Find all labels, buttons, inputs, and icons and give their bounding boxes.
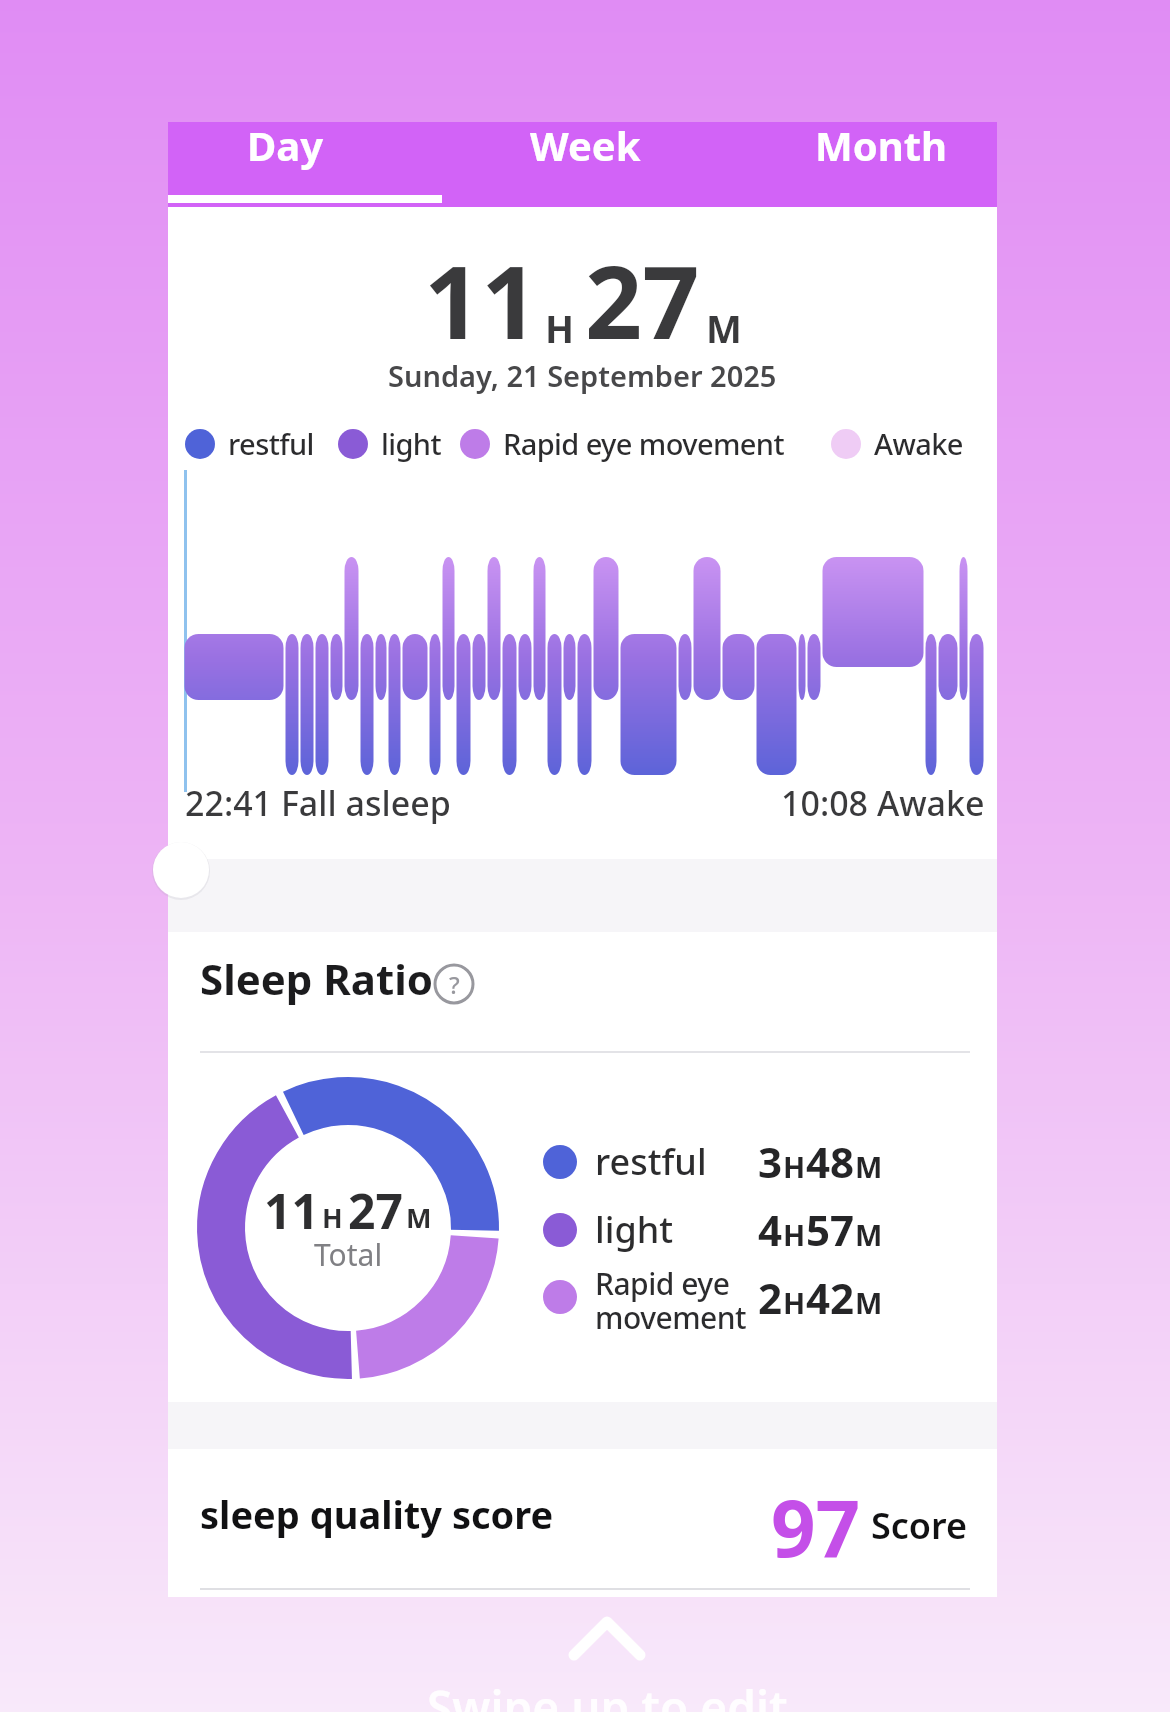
staticText: Awake	[874, 424, 963, 463]
staticText: Day	[247, 118, 324, 172]
button[interactable]: Week	[465, 122, 705, 207]
staticText: Rapid eye movement	[503, 424, 784, 463]
staticText: M	[406, 1199, 432, 1236]
staticText: sleep quality score	[200, 1488, 554, 1540]
button[interactable]: restful	[185, 424, 314, 463]
staticText: Week	[530, 118, 641, 172]
staticText: 57	[806, 1201, 855, 1258]
staticText: 48	[806, 1133, 855, 1190]
staticText: Sleep Ratio	[200, 950, 434, 1007]
button[interactable]: ?	[434, 964, 474, 1004]
staticText: H	[322, 1199, 343, 1236]
staticText: 2	[758, 1269, 783, 1326]
staticText: restful	[595, 1137, 707, 1186]
button[interactable]: light	[338, 424, 441, 463]
staticText: 10:08 Awake	[781, 780, 985, 826]
staticText: Swipe up to edit	[427, 1676, 788, 1712]
button[interactable]: Swipe up to edit	[407, 1582, 807, 1712]
staticText: H	[545, 302, 575, 354]
staticText: 97	[771, 1474, 861, 1564]
staticText: light	[595, 1205, 674, 1254]
staticText: Score	[871, 1501, 968, 1550]
staticText: H	[783, 1215, 806, 1254]
button[interactable]: Rapid eye movement	[460, 424, 784, 463]
staticText: Total	[314, 1234, 383, 1275]
staticText: M	[855, 1147, 883, 1186]
staticText: M	[855, 1215, 883, 1254]
staticText: H	[783, 1283, 806, 1322]
button[interactable]: Awake	[831, 424, 963, 463]
staticText: light	[381, 424, 441, 463]
staticText: ?	[449, 968, 460, 1001]
staticText: Rapid eye movement	[595, 1263, 747, 1331]
staticText: M	[855, 1283, 883, 1322]
staticText: M	[706, 302, 742, 354]
staticText: 3	[758, 1133, 783, 1190]
staticText: 27	[348, 1178, 403, 1243]
staticText: 27	[585, 232, 700, 368]
staticText: Sunday, 21 September 2025	[388, 356, 777, 395]
staticText: Month	[815, 118, 948, 172]
staticText: H	[783, 1147, 806, 1186]
staticText: 22:41 Fall asleep	[185, 780, 451, 826]
staticText: 11	[264, 1178, 319, 1243]
staticText: restful	[228, 424, 314, 463]
staticText: 11	[424, 232, 539, 368]
button[interactable]: Day	[165, 122, 405, 207]
staticText: 42	[806, 1269, 855, 1326]
staticText: 4	[758, 1201, 783, 1258]
button[interactable]: Month	[761, 122, 1001, 207]
